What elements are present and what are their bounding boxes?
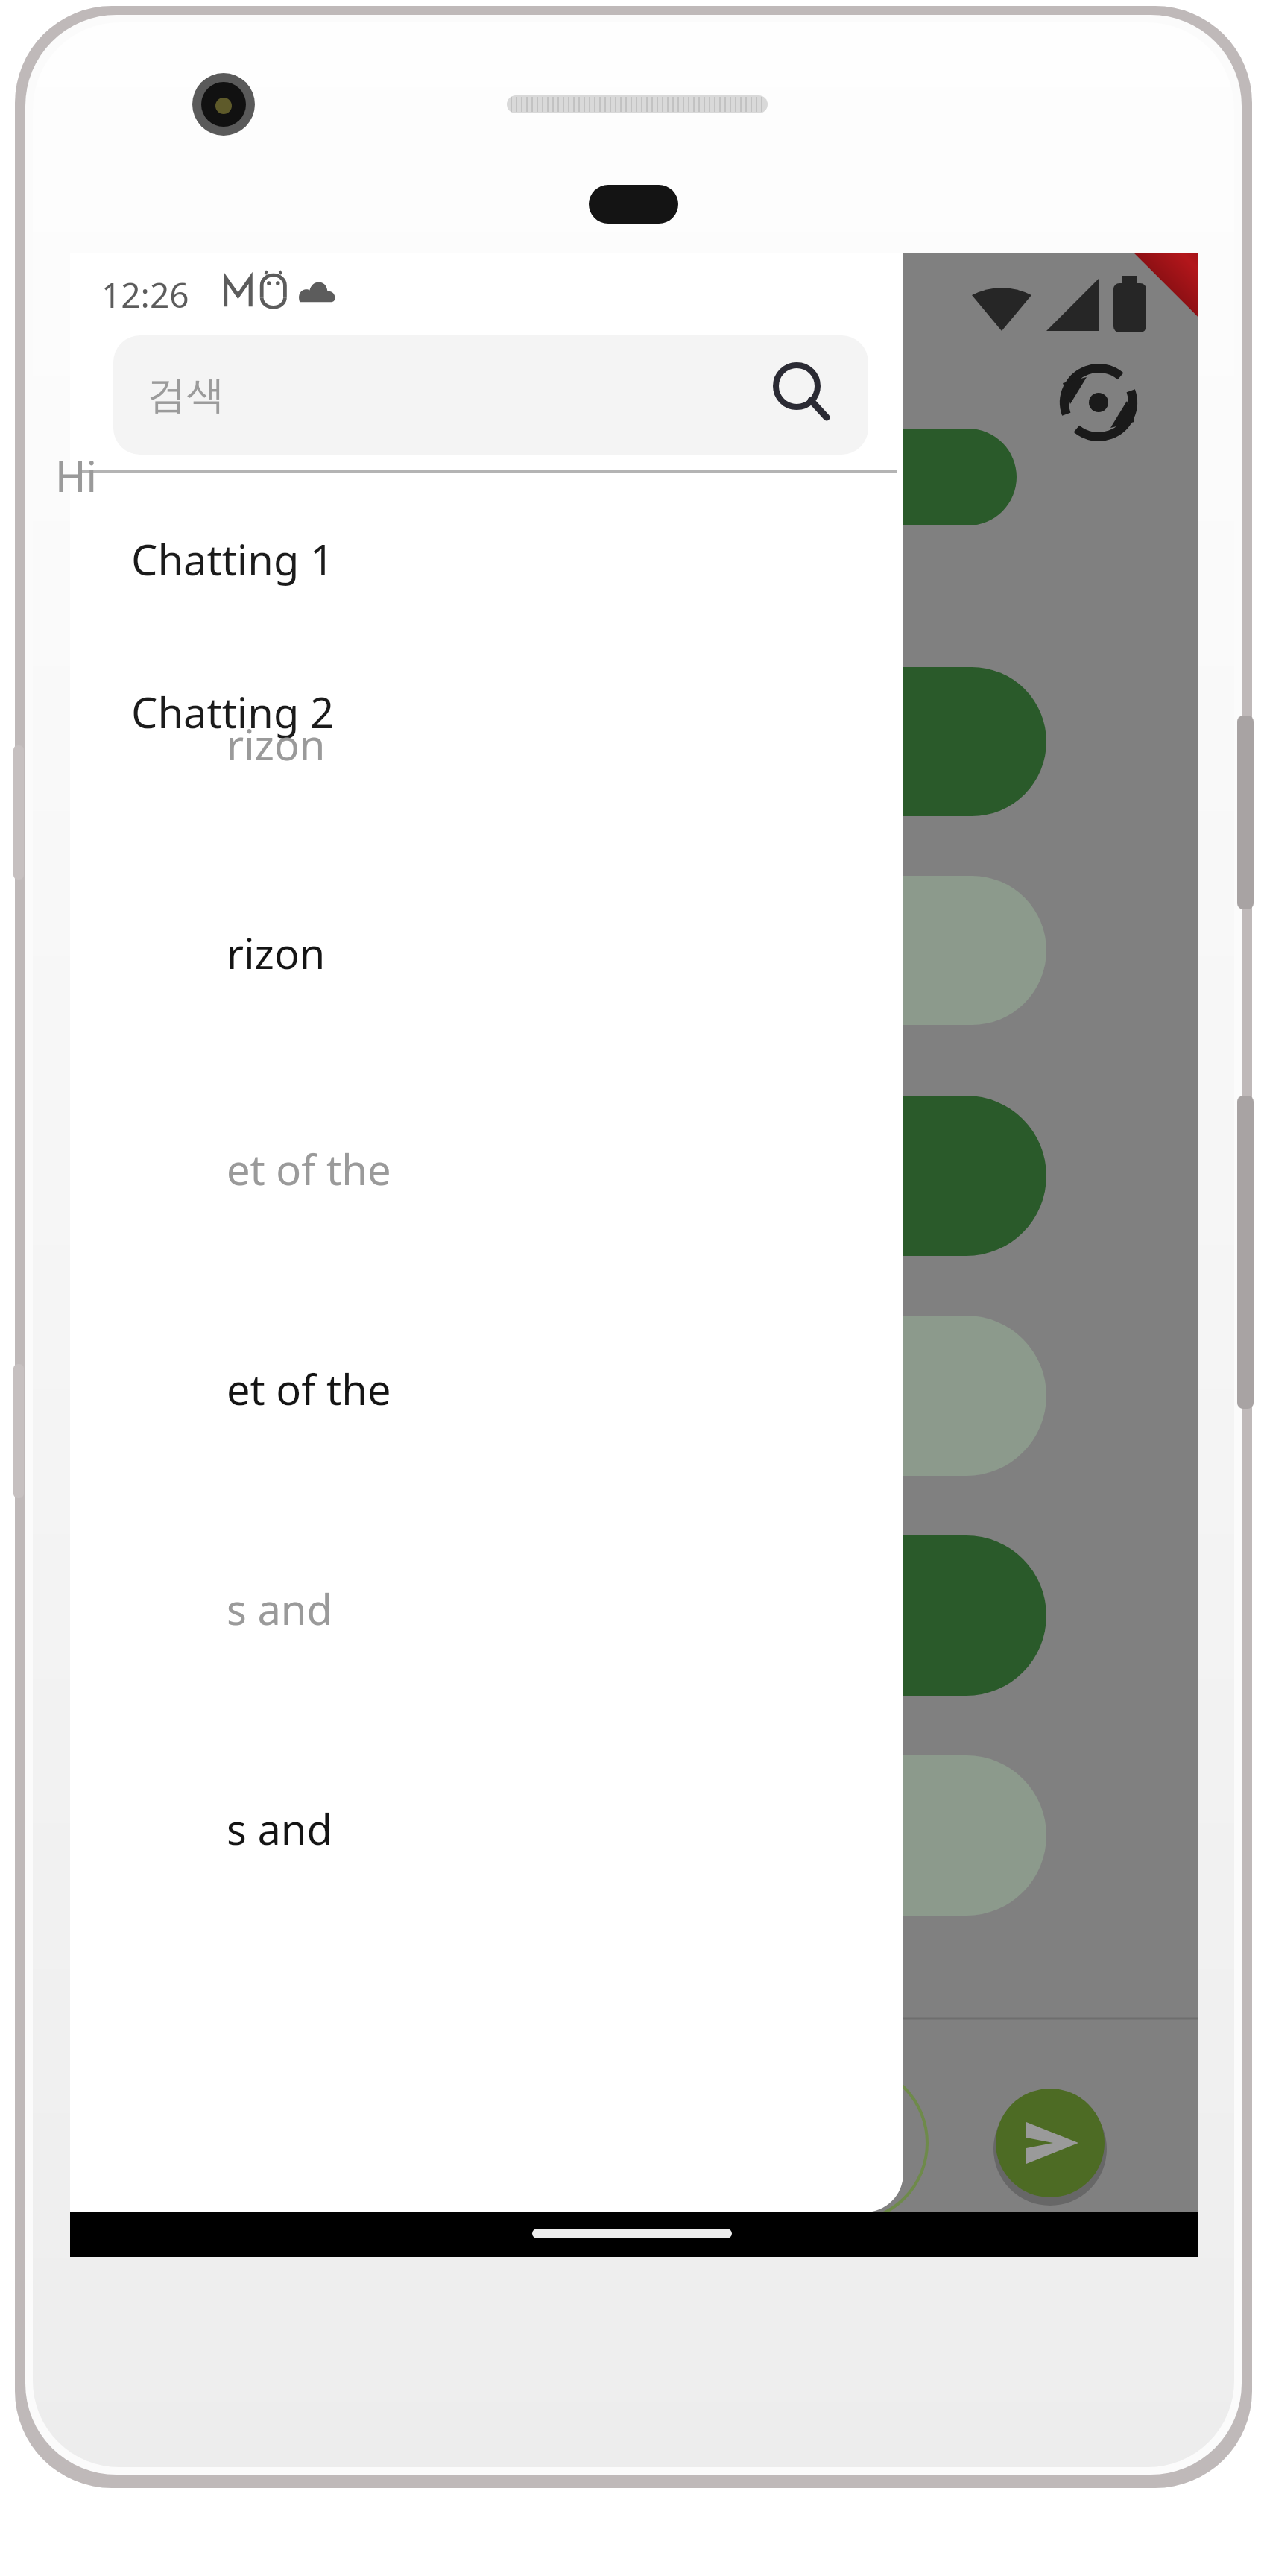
- staticText: s and: [227, 1800, 332, 1857]
- button[interactable]: 검색: [113, 335, 868, 455]
- staticText: et of the: [227, 1140, 391, 1197]
- button[interactable]: Send: [996, 2089, 1105, 2197]
- button[interactable]: Chatting 2: [70, 652, 903, 771]
- staticText: et of the: [227, 1360, 391, 1417]
- staticText: s and: [227, 1580, 332, 1637]
- button[interactable]: Chatting 1: [70, 499, 903, 619]
- staticText: 12:26: [101, 271, 189, 318]
- staticText: Chatting 2: [131, 684, 334, 740]
- staticText: 검색: [148, 370, 225, 420]
- button[interactable]: Sync: [1054, 358, 1151, 455]
- staticText: Hi: [55, 447, 97, 504]
- staticText: rizon: [227, 924, 326, 981]
- staticText: rizon: [227, 716, 326, 772]
- staticText: Chatting 1: [131, 531, 334, 587]
